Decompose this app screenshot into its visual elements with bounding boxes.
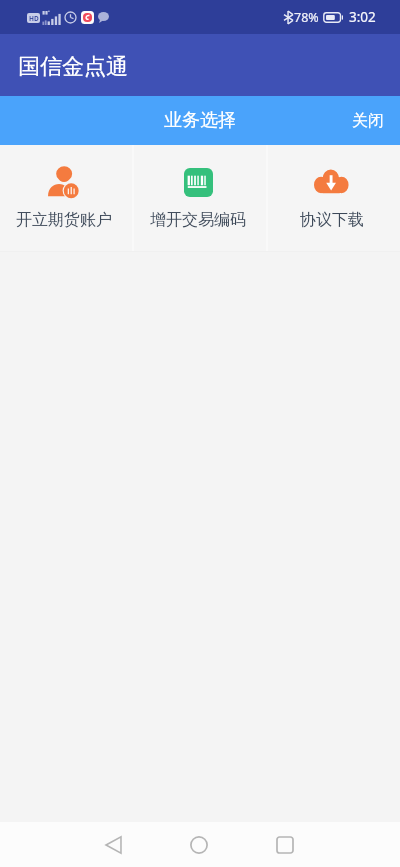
- button[interactable]: 增开交易编码: [134, 145, 266, 251]
- staticText: 78%: [294, 9, 319, 26]
- button[interactable]: 协议下载: [268, 145, 400, 251]
- staticText: 协议下载: [300, 210, 364, 230]
- staticText: 增开交易编码: [150, 210, 246, 230]
- button[interactable]: 关闭: [336, 96, 400, 145]
- staticText: HD: [29, 14, 39, 23]
- staticText: 业务选择: [164, 109, 236, 132]
- staticText: 3:02: [349, 8, 376, 26]
- staticText: 开立期货账户: [16, 210, 112, 230]
- staticText: 国信金点通: [18, 53, 128, 81]
- button[interactable]: Back: [91, 823, 135, 867]
- button[interactable]: Home: [177, 823, 221, 867]
- button[interactable]: Recent apps: [263, 823, 307, 867]
- button[interactable]: 开立期货账户: [0, 145, 132, 251]
- staticText: 关闭: [352, 111, 384, 131]
